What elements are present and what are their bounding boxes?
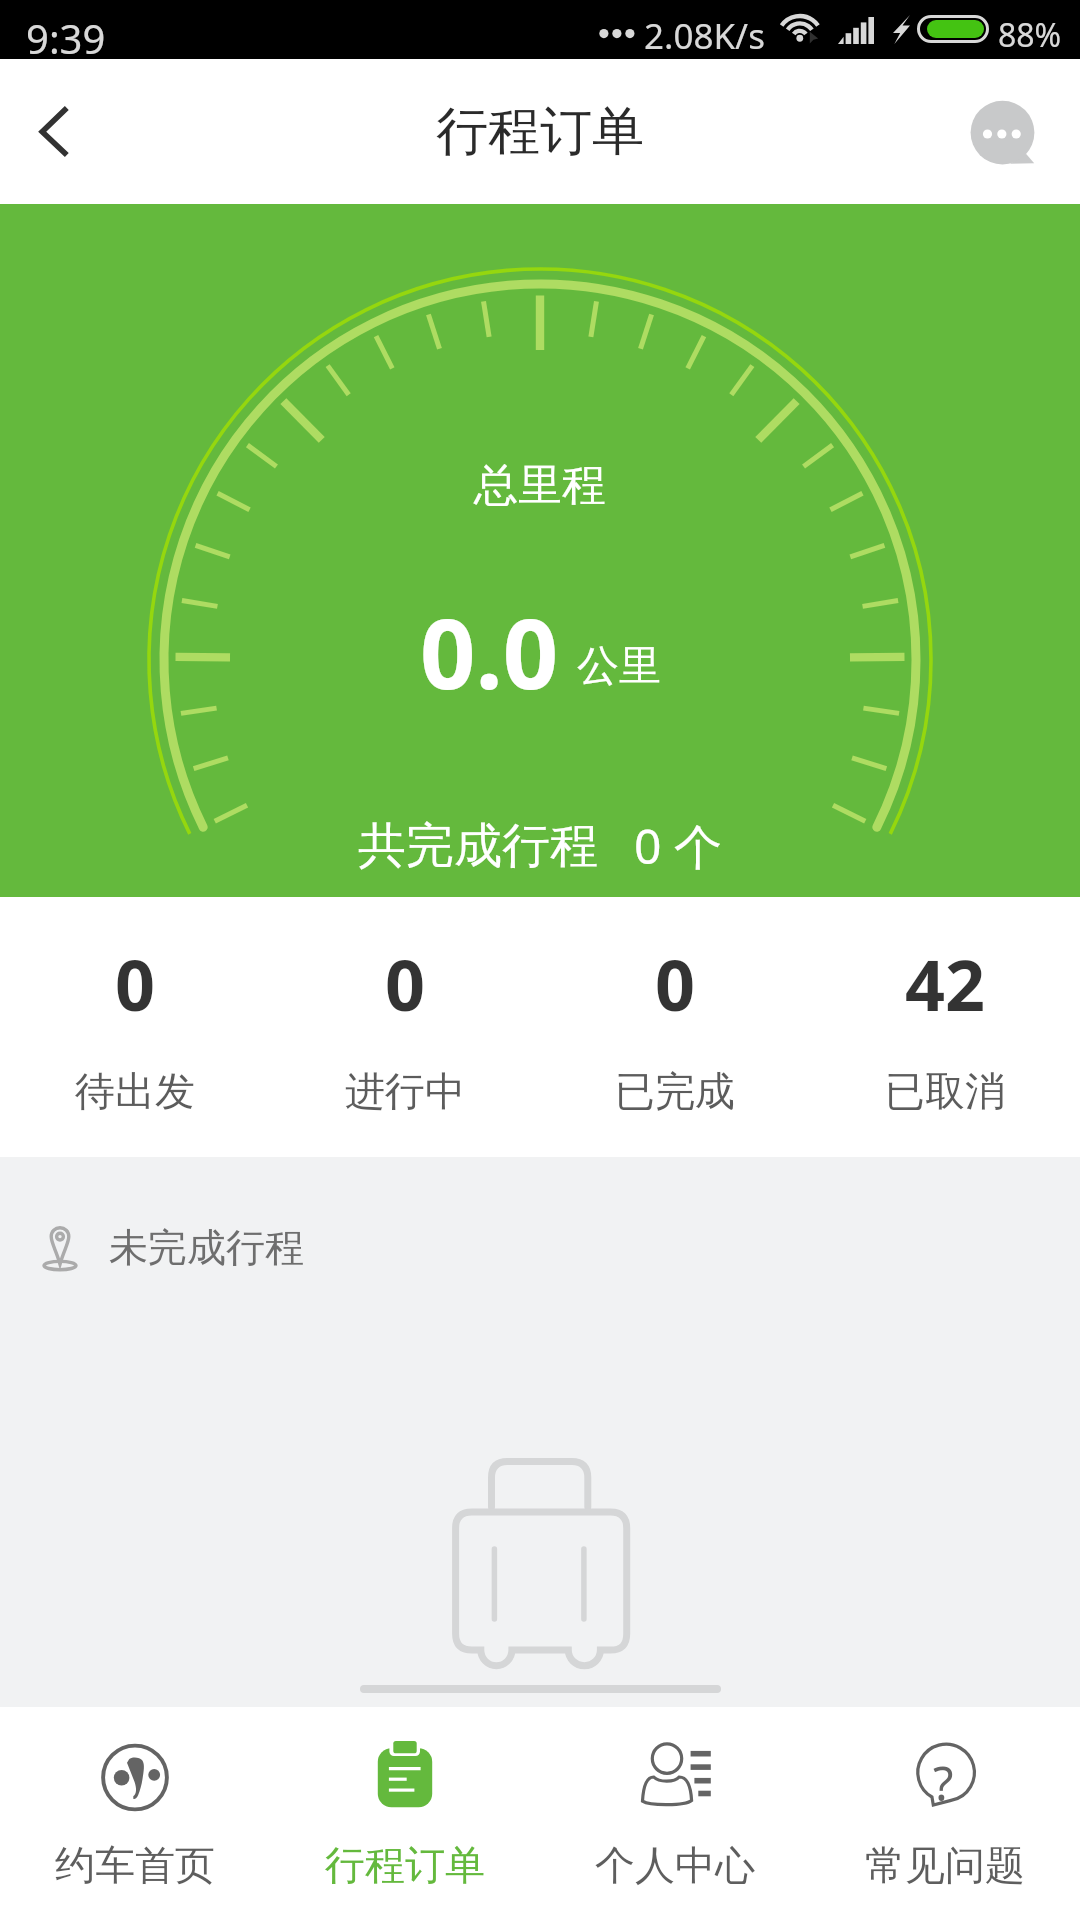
staticText: 待出发 — [75, 1066, 195, 1116]
button[interactable]: Messages — [940, 59, 1080, 204]
button[interactable]: Back — [0, 59, 140, 204]
staticText: 共完成行程 — [358, 816, 598, 876]
button[interactable]: 0 — [0, 897, 270, 1157]
staticText: 已取消 — [885, 1066, 1005, 1116]
staticText: ? — [933, 1751, 954, 1815]
staticText: 进行中 — [345, 1066, 465, 1116]
button[interactable]: 行程订单 — [270, 1707, 540, 1920]
staticText: 0.0 — [420, 585, 559, 717]
staticText: 个人中心 — [595, 1840, 755, 1890]
staticText: 9:39 — [26, 11, 106, 65]
staticText: 总里程 — [474, 458, 606, 513]
button[interactable]: 0 — [540, 897, 810, 1157]
button[interactable]: 42 — [810, 897, 1080, 1157]
button[interactable]: 约车首页 — [0, 1707, 270, 1920]
staticText: 公里 — [577, 640, 661, 693]
staticText: 0 — [385, 936, 426, 1031]
staticText: 42 — [905, 936, 986, 1031]
staticText: 88% — [998, 13, 1062, 57]
button[interactable]: ? — [810, 1707, 1080, 1920]
staticText: 0 个 — [634, 813, 722, 879]
staticText: 0 — [655, 936, 696, 1031]
button[interactable]: 个人中心 — [540, 1707, 810, 1920]
button[interactable]: 0 — [270, 897, 540, 1157]
staticText: 2.08K/s — [644, 12, 765, 60]
staticText: 约车首页 — [55, 1840, 215, 1890]
staticText: 行程订单 — [436, 99, 644, 165]
staticText: 已完成 — [615, 1066, 735, 1116]
staticText: 行程订单 — [325, 1840, 485, 1890]
staticText: 0 — [115, 936, 156, 1031]
staticText: 常见问题 — [865, 1840, 1025, 1890]
staticText: 未完成行程 — [109, 1223, 304, 1272]
